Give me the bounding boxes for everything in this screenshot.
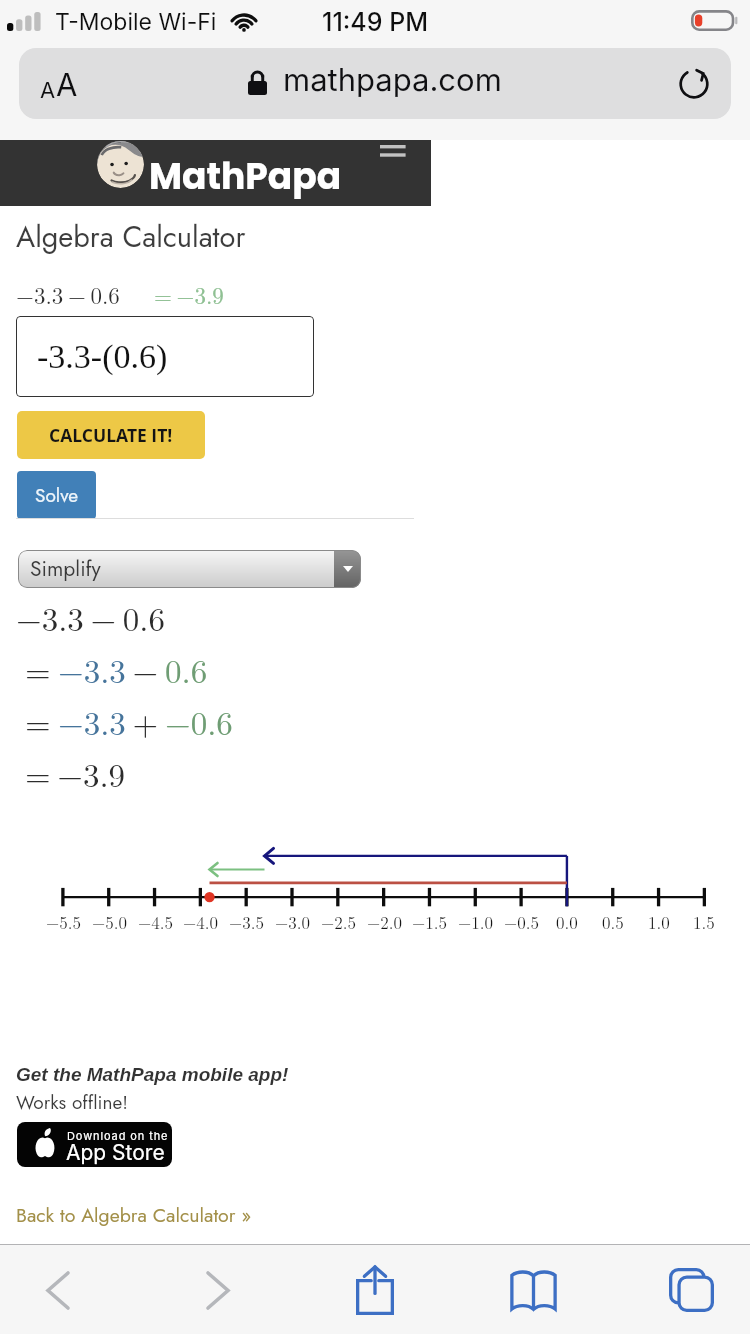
- staticText: −5.5: [46, 910, 81, 934]
- button[interactable]: Text size options: [19, 48, 731, 119]
- staticText: Solve: [35, 482, 79, 509]
- staticText: 0.0: [556, 910, 578, 934]
- staticText: −0.5: [504, 910, 539, 934]
- button[interactable]: Bookmarks: [486, 1254, 580, 1326]
- staticText: MathPapa: [149, 151, 342, 201]
- staticText: A: [56, 66, 78, 104]
- button[interactable]: Reload page: [671, 61, 717, 107]
- staticText: =: [25, 698, 58, 745]
- button[interactable]: Download on the App Store: [17, 1122, 172, 1167]
- staticText: -3.3-(0.6): [37, 338, 168, 376]
- staticText: −5.0: [92, 910, 127, 934]
- staticText: −1.5: [412, 910, 447, 934]
- staticText: Simplify: [30, 554, 101, 584]
- button[interactable]: CALCULATE IT!: [17, 411, 205, 459]
- staticText: −3.3: [58, 698, 126, 745]
- button[interactable]: Back to Algebra Calculator »: [16, 1201, 252, 1229]
- staticText: −2.0: [367, 910, 402, 934]
- staticText: −3.3 − 0.6: [16, 594, 165, 641]
- staticText: +: [126, 698, 165, 745]
- staticText: Download on the: [67, 1129, 169, 1142]
- staticText: Algebra Calculator: [16, 216, 246, 258]
- staticText: −3.5: [229, 910, 264, 934]
- staticText: T-Mobile Wi-Fi: [55, 8, 217, 36]
- staticText: = −3.9: [154, 278, 224, 311]
- staticText: −4.5: [138, 910, 173, 934]
- button[interactable]: Menu: [374, 141, 410, 163]
- staticText: CALCULATE IT!: [49, 423, 173, 447]
- staticText: 0.5: [602, 910, 624, 934]
- button[interactable]: -3.3-(0.6): [16, 316, 314, 397]
- button[interactable]: Simplify: [18, 550, 361, 588]
- staticText: Get the MathPapa mobile app!: [16, 1064, 289, 1085]
- button[interactable]: Text size options: [40, 66, 78, 104]
- button[interactable]: Back: [11, 1254, 105, 1326]
- staticText: A: [40, 77, 56, 104]
- staticText: −: [126, 646, 165, 693]
- staticText: 11:49 PM: [322, 7, 429, 37]
- staticText: Works offline!: [16, 1089, 128, 1116]
- staticText: −2.5: [321, 910, 356, 934]
- staticText: −1.0: [458, 910, 493, 934]
- staticText: = −3.9: [25, 750, 126, 797]
- staticText: 0.6: [165, 646, 208, 693]
- staticText: =: [25, 646, 58, 693]
- staticText: −3.0: [275, 910, 310, 934]
- button[interactable]: Solve: [17, 471, 96, 519]
- staticText: −3.3: [58, 646, 126, 693]
- staticText: App Store: [66, 1140, 165, 1165]
- staticText: 1.0: [648, 910, 670, 934]
- button[interactable]: Forward: [171, 1254, 265, 1326]
- staticText: −3.3 − 0.6: [16, 278, 120, 311]
- staticText: 1.5: [693, 910, 715, 934]
- staticText: mathpapa.com: [283, 61, 502, 99]
- staticText: −0.6: [165, 698, 233, 745]
- button[interactable]: Tabs: [644, 1254, 738, 1326]
- staticText: −4.0: [183, 910, 218, 934]
- button[interactable]: Share: [328, 1254, 422, 1326]
